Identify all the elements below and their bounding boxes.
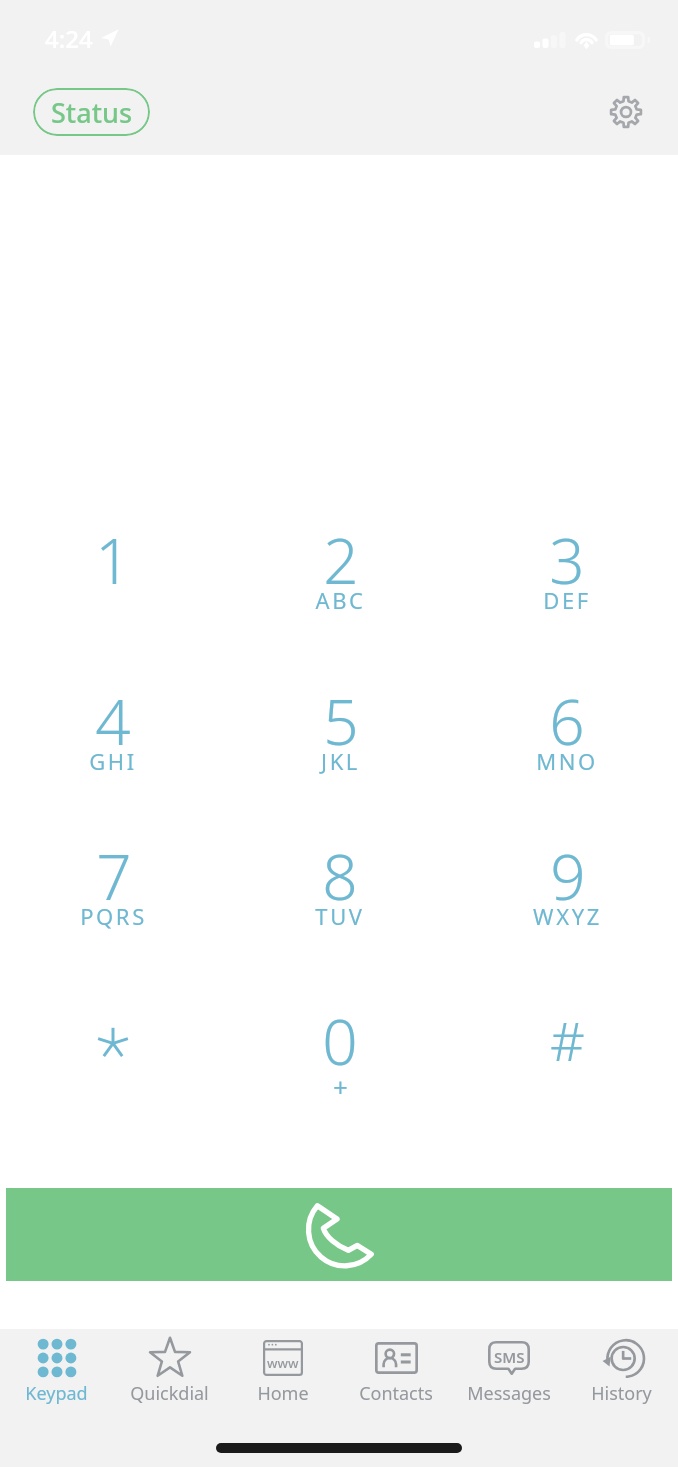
button[interactable]: Settings (602, 88, 650, 136)
staticText: + (333, 1069, 348, 1104)
staticText: TUV (315, 901, 365, 931)
button[interactable]: 3 (492, 518, 642, 648)
staticText: MNO (536, 746, 598, 776)
button[interactable]: Keypad (0, 1329, 113, 1409)
staticText: JKL (321, 746, 360, 776)
staticText: DEF (543, 585, 591, 615)
button[interactable]: Status (33, 88, 150, 136)
staticText: 1 (95, 518, 131, 602)
button[interactable]: 9 (492, 834, 642, 964)
staticText: 2 (323, 518, 359, 602)
staticText: Home (257, 1381, 309, 1406)
button[interactable]: # (492, 999, 642, 1129)
staticText: Status (51, 94, 133, 131)
staticText: Keypad (25, 1381, 88, 1406)
staticText: 6 (549, 679, 585, 763)
staticText: Quickdial (130, 1381, 209, 1406)
staticText: History (591, 1381, 652, 1406)
staticText: www (267, 1354, 299, 1372)
staticText: 8 (322, 834, 358, 918)
button[interactable]: SMS (452, 1329, 565, 1409)
staticText: 4:24 (45, 22, 93, 55)
button[interactable]: Quickdial (113, 1329, 226, 1409)
button[interactable]: History (565, 1329, 678, 1409)
button[interactable]: 6 (492, 679, 642, 809)
staticText: SMS (494, 1347, 525, 1367)
staticText: 3 (549, 518, 585, 602)
button[interactable]: 8 (265, 834, 415, 964)
staticText: 4 (95, 679, 131, 763)
button[interactable]: 2 (265, 518, 415, 648)
button[interactable]: 5 (265, 679, 415, 809)
button[interactable] (38, 999, 188, 1129)
staticText: Contacts (359, 1381, 433, 1406)
staticText: GHI (89, 746, 137, 776)
button[interactable]: www (226, 1329, 339, 1409)
staticText: # (550, 1003, 585, 1077)
staticText: 7 (96, 834, 132, 918)
button[interactable]: 0 (265, 999, 415, 1129)
staticText: 0 (322, 999, 358, 1083)
button[interactable]: 1 (38, 518, 188, 648)
button[interactable]: 7 (38, 834, 188, 964)
staticText: PQRS (80, 901, 147, 931)
staticText: ABC (315, 585, 366, 615)
button[interactable]: Contacts (339, 1329, 452, 1409)
staticText: Messages (467, 1381, 551, 1406)
button[interactable]: Call (6, 1188, 672, 1281)
staticText: WXYZ (533, 901, 602, 931)
button[interactable]: 4 (38, 679, 188, 809)
staticText: 5 (323, 679, 359, 763)
staticText: 9 (550, 834, 586, 918)
